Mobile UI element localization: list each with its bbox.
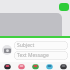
button[interactable]: Emoji 1 xyxy=(0,62,14,70)
button[interactable]: Sent message xyxy=(59,3,69,11)
staticText: Subject xyxy=(17,42,35,49)
button[interactable]: Emoji 3 xyxy=(28,62,42,70)
button[interactable]: Attach media xyxy=(2,45,12,55)
button[interactable]: Emoji 4 xyxy=(42,62,56,70)
button[interactable]: Text Message xyxy=(14,51,68,60)
staticText: Text Message xyxy=(17,52,49,59)
button[interactable] xyxy=(0,13,62,43)
button[interactable]: Emoji 5 xyxy=(56,62,70,70)
button[interactable]: Subject xyxy=(14,41,68,50)
button[interactable]: Emoji 2 xyxy=(14,62,28,70)
